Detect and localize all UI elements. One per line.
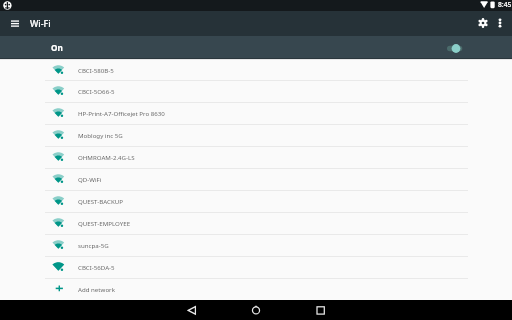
- button[interactable]: Add network: [0, 278, 512, 300]
- staticText: OHMROAM-2.4G-LS: [78, 153, 135, 161]
- button[interactable]: CBCI-580B-5: [0, 59, 512, 81]
- button[interactable]: Settings: [474, 14, 492, 32]
- staticText: QUEST-BACKUP: [78, 197, 123, 205]
- staticText: suncpa-5G: [78, 241, 109, 249]
- staticText: Moblogy inc 5G: [78, 131, 123, 139]
- button[interactable]: CBCI-5O66-5: [0, 80, 512, 102]
- staticText: 8:45: [498, 0, 512, 9]
- button[interactable]: CBCI-56DA-5: [0, 256, 512, 278]
- button[interactable]: QD-WiFi: [0, 168, 512, 190]
- button[interactable]: Home: [241, 300, 271, 320]
- staticText: CBCI-580B-5: [78, 66, 114, 74]
- staticText: CBCI-5O66-5: [78, 87, 115, 95]
- button[interactable]: Back: [176, 300, 206, 320]
- staticText: QUEST-EMPLOYEE: [78, 219, 131, 227]
- button[interactable]: Wi-Fi on/off: [444, 40, 468, 56]
- button[interactable]: More options: [493, 16, 507, 30]
- staticText: QD-WiFi: [78, 175, 102, 183]
- button[interactable]: QUEST-BACKUP: [0, 190, 512, 212]
- staticText: Add network: [78, 285, 115, 293]
- button[interactable]: Open navigation drawer: [4, 12, 26, 34]
- staticText: HP-Print-A7-Officejet Pro 8630: [78, 109, 165, 117]
- button[interactable]: Recent apps: [306, 300, 336, 320]
- staticText: Wi-Fi: [30, 17, 51, 29]
- button[interactable]: On: [0, 36, 512, 59]
- button[interactable]: suncpa-5G: [0, 234, 512, 256]
- staticText: CBCI-56DA-5: [78, 263, 115, 271]
- button[interactable]: OHMROAM-2.4G-LS: [0, 146, 512, 168]
- button[interactable]: Moblogy inc 5G: [0, 124, 512, 146]
- button[interactable]: HP-Print-A7-Officejet Pro 8630: [0, 102, 512, 124]
- button[interactable]: QUEST-EMPLOYEE: [0, 212, 512, 234]
- staticText: On: [51, 42, 63, 53]
